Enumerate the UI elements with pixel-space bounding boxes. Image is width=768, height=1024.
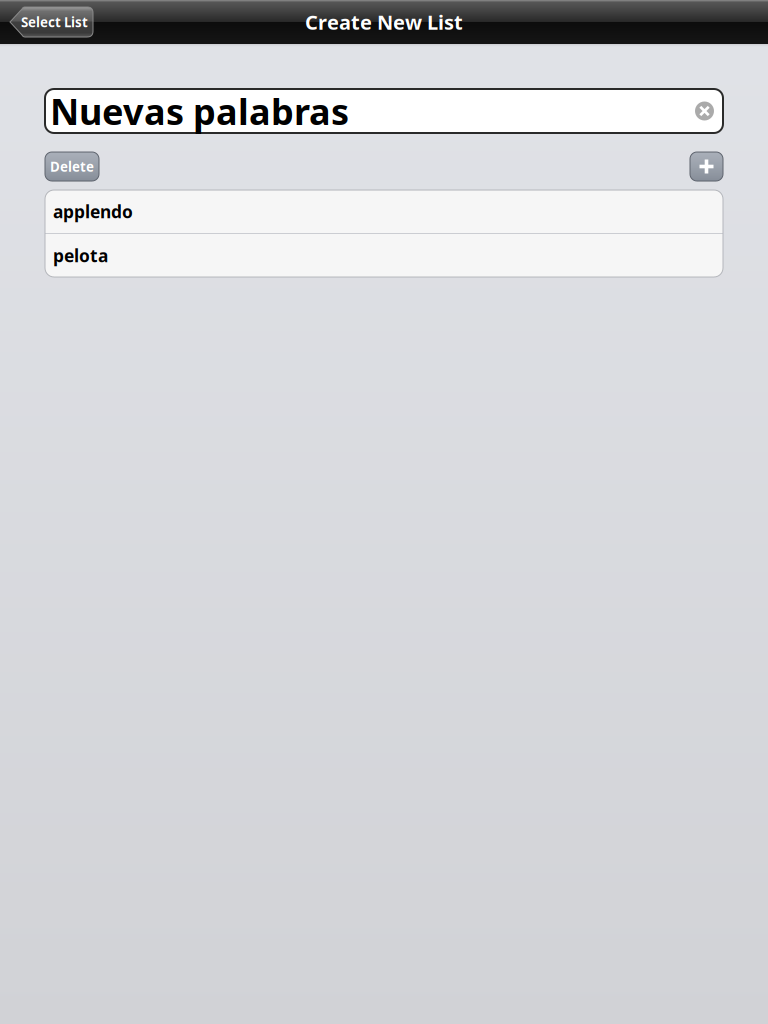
staticText: Delete	[50, 158, 94, 175]
button[interactable]: Add word	[690, 152, 723, 181]
staticText: Select List	[21, 13, 88, 31]
button[interactable]: pelota	[45, 234, 723, 277]
button[interactable]: Clear text	[695, 101, 723, 120]
staticText: applendo	[53, 200, 133, 223]
staticText: Create New List	[305, 9, 463, 35]
staticText: Nuevas palabras	[50, 87, 349, 135]
button[interactable]: Delete	[45, 152, 99, 181]
staticText: pelota	[53, 244, 108, 267]
button[interactable]: applendo	[45, 190, 723, 234]
button[interactable]: Select List	[8, 7, 93, 37]
